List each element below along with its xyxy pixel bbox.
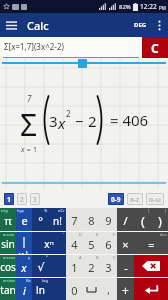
button[interactable]: DEG [131, 21, 150, 29]
staticText: B [96, 255, 99, 260]
staticText: ) [158, 212, 162, 230]
button[interactable]: Space [83, 278, 100, 300]
staticText: α-ω [149, 195, 161, 204]
staticText: x [21, 260, 27, 275]
staticText: + [122, 282, 129, 298]
staticText: 2 [20, 195, 24, 204]
staticText: 7 [71, 213, 78, 228]
staticText: 3 [105, 260, 112, 275]
button[interactable]: 1 [4, 193, 14, 205]
staticText: arctan [3, 278, 15, 283]
staticText: 3 [33, 195, 37, 204]
button[interactable]: log [32, 278, 49, 300]
staticText: hyp [17, 208, 24, 213]
button[interactable]: |x| [16, 232, 32, 254]
staticText: 2 [88, 260, 95, 275]
button[interactable]: - [117, 255, 134, 277]
staticText: = [25, 145, 33, 155]
staticText: nCr [58, 208, 65, 213]
button[interactable]: D [66, 232, 83, 254]
staticText: Σ [20, 104, 38, 145]
staticText: cos [0, 260, 16, 274]
staticText: Calc [27, 18, 49, 33]
button[interactable]: 8 [83, 208, 100, 231]
staticText: ³ [46, 255, 48, 260]
staticText: 8 [88, 213, 95, 228]
staticText: = [148, 237, 155, 252]
button[interactable]: More options [150, 16, 168, 34]
button[interactable]: [ [134, 208, 151, 231]
button[interactable]: arctan [0, 278, 16, 300]
staticText: 5 [88, 237, 95, 252]
button[interactable]: 0-9 [108, 193, 124, 205]
staticText: arccos [3, 255, 15, 260]
button[interactable]: 2 [17, 193, 27, 205]
button[interactable]: E [83, 232, 100, 254]
staticText: √ [37, 261, 45, 274]
button[interactable]: + [117, 278, 134, 300]
staticText: x [58, 113, 66, 133]
button[interactable]: ³ [32, 255, 49, 277]
button[interactable]: arccos [0, 255, 16, 277]
button[interactable]: Enter [134, 278, 168, 300]
button[interactable]: Σ[x=1,7](3x^2-2) [0, 37, 142, 58]
button[interactable]: , [100, 278, 117, 300]
staticText: 4 [71, 237, 78, 252]
staticText: tan [0, 283, 16, 297]
button[interactable]: / [117, 208, 134, 231]
button[interactable]: B [83, 255, 100, 277]
button[interactable]: C [100, 255, 117, 277]
staticText: Ans [160, 232, 167, 237]
button[interactable]: Backspace [134, 255, 168, 277]
button[interactable]: Ans [134, 232, 168, 254]
staticText: 6 [105, 237, 112, 252]
staticText: D [79, 232, 82, 237]
staticText: 12:22 [140, 2, 157, 11]
button[interactable]: nCr [49, 208, 66, 231]
button[interactable]: 7 [66, 208, 83, 231]
staticText: % [44, 208, 48, 213]
staticText: i [23, 283, 26, 298]
staticText: / [123, 213, 128, 228]
staticText: sin [1, 237, 15, 251]
staticText: |x| [16, 234, 32, 254]
staticText: A [79, 255, 82, 260]
button[interactable]: ] [151, 208, 168, 231]
staticText: Re [26, 278, 31, 283]
staticText: 82% [119, 3, 131, 11]
staticText: 9 [105, 213, 112, 228]
button[interactable]: % [32, 208, 49, 231]
button[interactable]: Re [16, 278, 32, 300]
button[interactable]: C [142, 37, 168, 58]
staticText: 1 [33, 145, 38, 155]
button[interactable]: 3 [30, 193, 40, 205]
staticText: trig [1, 208, 8, 213]
staticText: - [124, 260, 128, 275]
staticText: Σ[x=1,7](3x^2-2) [4, 41, 64, 52]
staticText: 0-9 [111, 195, 121, 204]
staticText: 2 [66, 108, 71, 119]
button[interactable]: F [100, 232, 117, 254]
staticText: log [42, 278, 48, 283]
button[interactable]: A [66, 255, 83, 277]
staticText: x [21, 145, 25, 155]
button[interactable]: Menu [0, 14, 22, 36]
button[interactable]: 9 [100, 208, 117, 231]
button[interactable]: α-ω [146, 193, 164, 205]
button[interactable]: ˄ [32, 232, 66, 254]
button[interactable]: y [16, 255, 32, 277]
staticText: [ [148, 208, 150, 213]
staticText: , [107, 283, 110, 297]
button[interactable]: arcsin [0, 232, 16, 254]
staticText: arcsin [3, 232, 15, 237]
staticText: y [28, 255, 31, 260]
button[interactable]: × [117, 232, 134, 254]
staticText: 0 [71, 283, 78, 298]
button[interactable]: 0 [66, 278, 83, 300]
button[interactable]: a-z [127, 193, 143, 205]
staticText: 2 [88, 111, 97, 131]
button[interactable]: hyp [16, 208, 32, 231]
staticText: E [96, 232, 99, 237]
button[interactable]: trig [0, 208, 16, 231]
staticText: π [4, 213, 12, 228]
